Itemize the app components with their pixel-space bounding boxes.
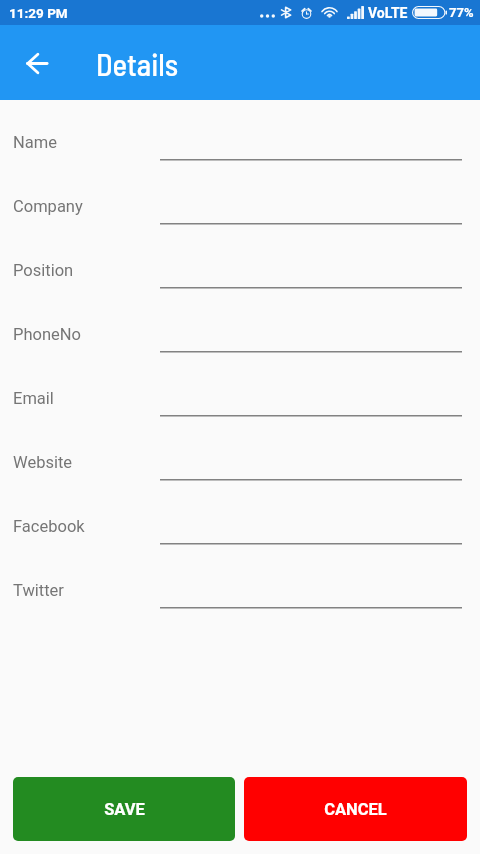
- staticText: Name: [13, 133, 57, 152]
- staticText: Details: [96, 45, 179, 82]
- button[interactable]: Position: [160, 240, 462, 304]
- button[interactable]: Back: [13, 39, 61, 87]
- button[interactable]: Website: [160, 432, 462, 496]
- button[interactable]: Twitter: [160, 560, 462, 624]
- staticText: Email: [13, 389, 54, 408]
- staticText: Facebook: [13, 517, 85, 536]
- button[interactable]: Facebook: [160, 496, 462, 560]
- staticText: 77%: [449, 5, 474, 20]
- button[interactable]: Email: [160, 368, 462, 432]
- staticText: Website: [13, 453, 73, 472]
- staticText: PhoneNo: [13, 325, 81, 344]
- button[interactable]: CANCEL: [244, 777, 467, 841]
- staticText: Position: [13, 261, 74, 280]
- button[interactable]: Company: [160, 176, 462, 240]
- staticText: Twitter: [13, 581, 64, 600]
- staticText: SAVE: [104, 800, 145, 819]
- staticText: VoLTE: [368, 5, 408, 21]
- button[interactable]: PhoneNo: [160, 304, 462, 368]
- staticText: 11:29 PM: [9, 5, 68, 21]
- staticText: CANCEL: [324, 800, 387, 819]
- staticText: Company: [13, 197, 83, 216]
- button[interactable]: SAVE: [13, 777, 235, 841]
- button[interactable]: Name: [160, 112, 462, 176]
